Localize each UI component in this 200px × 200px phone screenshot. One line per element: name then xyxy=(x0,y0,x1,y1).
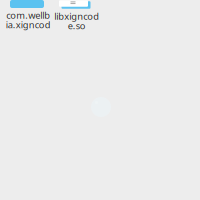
staticText: com.wellb ia.xigncod xyxy=(5,9,50,31)
staticText: libxigncod e.so xyxy=(54,10,99,32)
button[interactable]: libxigncode.so file xyxy=(38,0,108,33)
button[interactable]: com.wellbia.xigncode folder xyxy=(0,0,62,32)
